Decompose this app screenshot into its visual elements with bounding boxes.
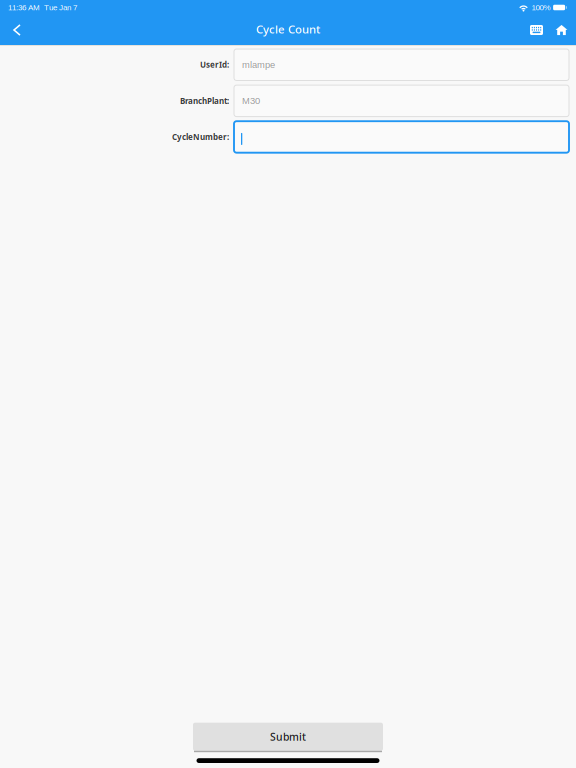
- staticText: BranchPlant:: [180, 95, 229, 106]
- button[interactable]: Submit: [193, 723, 383, 752]
- staticText: 11:36 AM: [8, 3, 40, 12]
- staticText: Submit: [270, 730, 306, 744]
- staticText: Cycle Count: [256, 21, 320, 37]
- button[interactable]: Show keyboard: [524, 15, 549, 44]
- staticText: Tue Jan 7: [44, 3, 77, 12]
- staticText: mlampe: [242, 59, 275, 70]
- button[interactable]: Home: [549, 15, 574, 44]
- staticText: CycleNumber:: [172, 131, 229, 142]
- button[interactable]: Back: [2, 15, 32, 44]
- staticText: 100%: [532, 3, 551, 12]
- staticText: UserId:: [200, 59, 229, 70]
- staticText: M30: [242, 96, 260, 106]
